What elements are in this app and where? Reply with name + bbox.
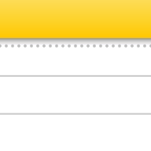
button[interactable]: Edit note — [0, 48, 151, 151]
button[interactable]: Tear off note — [0, 38, 151, 48]
button[interactable]: New note — [0, 0, 151, 38]
